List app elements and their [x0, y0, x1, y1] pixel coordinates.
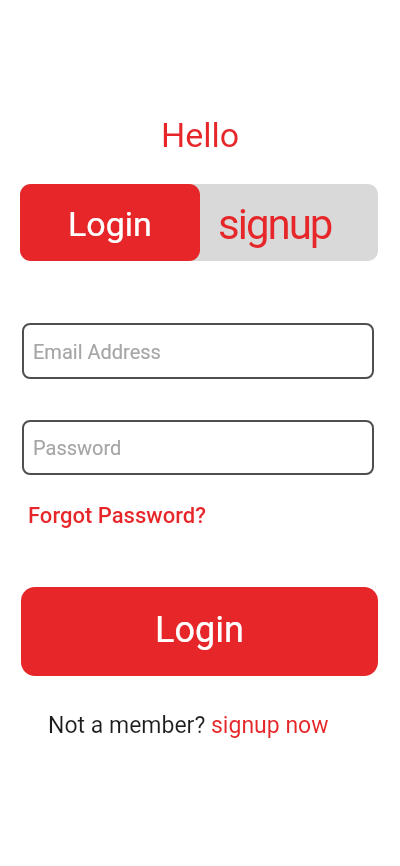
button[interactable]: signup [200, 184, 378, 261]
button[interactable]: Email Address [22, 323, 374, 379]
button[interactable]: Login [21, 587, 378, 676]
staticText: Login [68, 204, 152, 244]
button[interactable]: Forgot Password? [28, 503, 206, 529]
button[interactable]: signup now [211, 712, 329, 739]
staticText: Email Address [33, 340, 161, 363]
button[interactable]: Password [22, 420, 374, 475]
staticText: signup [218, 200, 332, 249]
staticText: Password [33, 436, 122, 459]
button[interactable]: Login [20, 184, 200, 261]
staticText: Not a member? [48, 712, 211, 739]
staticText: Hello [0, 115, 400, 155]
staticText: Login [155, 609, 244, 651]
